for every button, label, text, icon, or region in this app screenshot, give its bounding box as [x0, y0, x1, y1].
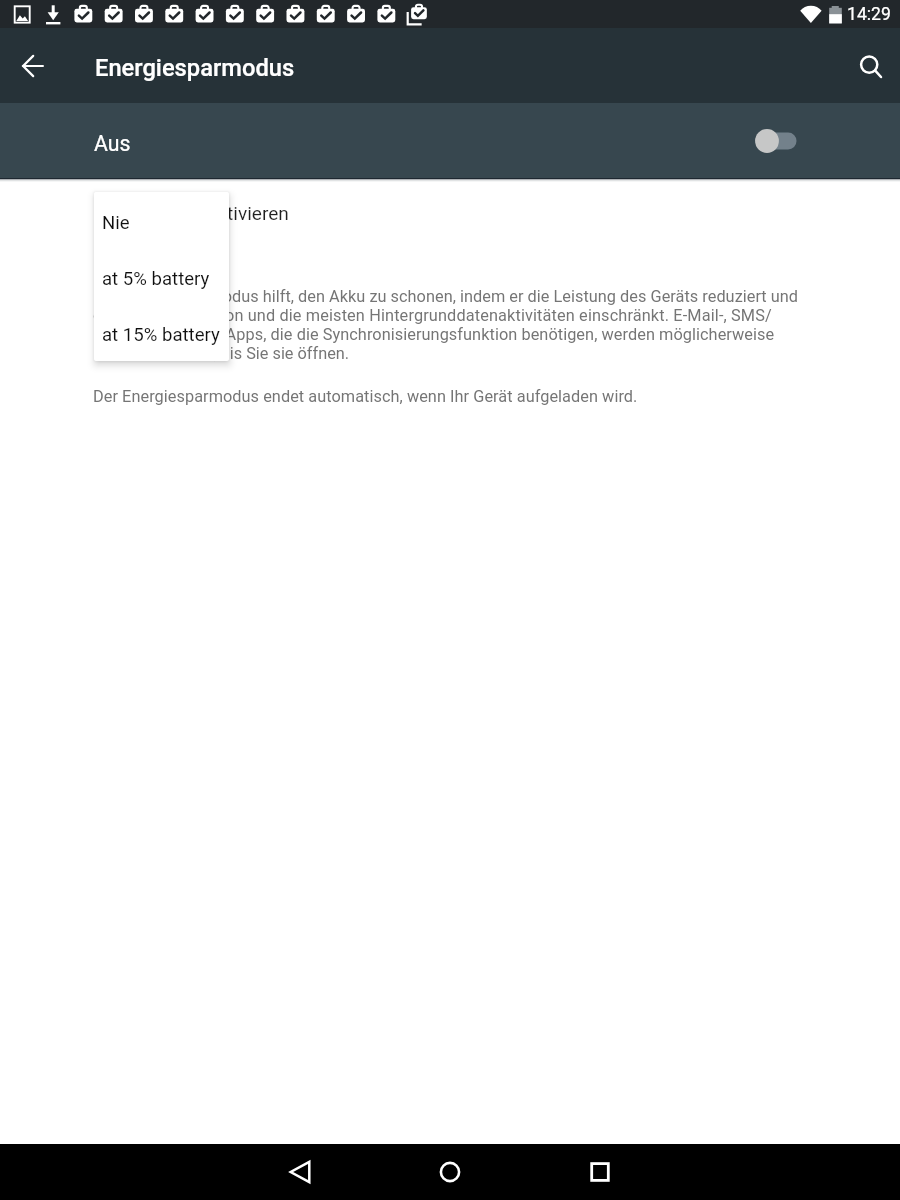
staticText: Der Energiesparmodus endet automatisch, …	[93, 387, 638, 406]
button[interactable]: at 15% battery	[94, 306, 229, 361]
button[interactable]: Home	[414, 1144, 486, 1200]
staticText: at 5% battery	[102, 268, 210, 290]
staticText: Energiesparmodus	[95, 54, 295, 82]
staticText: die Standortfunktion und die meisten Hin…	[93, 306, 772, 325]
staticText: Aus	[94, 131, 131, 156]
button[interactable]: Automatisch aktivieren	[0, 200, 900, 245]
staticText: Nie	[102, 212, 130, 234]
button[interactable]: Aus	[0, 103, 900, 178]
button[interactable]: Search	[850, 42, 898, 90]
button[interactable]: Nie	[94, 194, 229, 250]
button[interactable]: Back	[9, 42, 57, 90]
button[interactable]: at 5% battery	[94, 250, 229, 306]
staticText: Der Energiesparmodus hilft, den Akku zu …	[93, 287, 799, 306]
button[interactable]: Back	[264, 1144, 336, 1200]
button[interactable]: Recent apps	[564, 1144, 636, 1200]
staticText: at 15% battery	[102, 324, 220, 346]
staticText: MMS- und andere Apps, die die Synchronis…	[93, 325, 775, 344]
staticText: 14:29	[847, 4, 891, 25]
staticText: Nie	[93, 226, 118, 245]
staticText: nicht aktualisiert, bis Sie sie öffnen.	[93, 344, 350, 363]
staticText: Automatisch aktivieren	[94, 202, 289, 224]
